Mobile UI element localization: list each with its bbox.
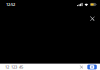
- button[interactable]: Camera: [87, 65, 97, 69]
- staticText: 12 123 45: [5, 64, 23, 70]
- button[interactable]: Close: [87, 14, 97, 24]
- staticText: 12:52: [6, 2, 15, 7]
- button[interactable]: Clear: [78, 64, 85, 70]
